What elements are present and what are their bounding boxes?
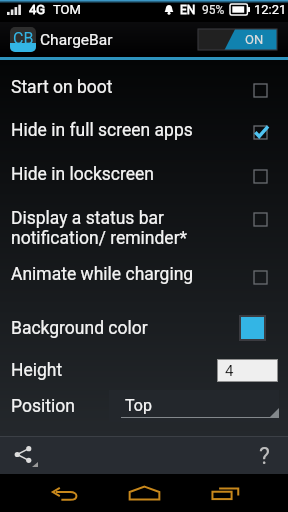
staticText: Position <box>11 396 75 417</box>
staticText: 4G <box>29 2 46 17</box>
staticText: Hide in full screen apps <box>11 120 254 141</box>
button[interactable]: Hide in lockscreen <box>0 152 288 196</box>
button[interactable]: Height <box>0 348 288 392</box>
button[interactable]: Display a status bar notification/ remin… <box>0 201 288 255</box>
staticText: ? <box>259 443 270 470</box>
staticText: Height <box>11 360 217 381</box>
button[interactable]: Share <box>4 438 40 474</box>
button[interactable]: Position <box>0 384 288 428</box>
button[interactable]: Recents <box>193 474 257 512</box>
staticText: ON <box>245 32 264 47</box>
button[interactable]: Background color <box>0 306 288 350</box>
button[interactable]: Help <box>248 440 280 472</box>
staticText: Background color <box>11 318 239 339</box>
staticText: Hide in lockscreen <box>11 164 254 185</box>
button[interactable]: Home <box>112 474 176 512</box>
staticText: Top <box>125 396 152 415</box>
staticText: Display a status bar notification/ remin… <box>11 208 254 248</box>
staticText: CB <box>13 29 34 48</box>
staticText: 4 <box>225 362 234 380</box>
staticText: Animate while charging <box>11 264 254 285</box>
button[interactable]: Hide in full screen apps <box>0 108 288 152</box>
button[interactable]: Back <box>33 474 97 512</box>
staticText: TOM <box>53 2 81 17</box>
button[interactable]: Start on boot <box>0 65 288 109</box>
button[interactable]: ON <box>198 29 277 50</box>
staticText: EN <box>180 3 196 17</box>
staticText: Start on boot <box>11 77 254 98</box>
staticText: 95% <box>202 3 225 17</box>
staticText: 12:21 <box>254 2 287 17</box>
button[interactable]: Animate while charging <box>0 252 288 296</box>
staticText: ChargeBar <box>40 31 113 49</box>
